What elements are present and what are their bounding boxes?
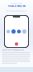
- button[interactable]: Record: [15, 42, 18, 46]
- button[interactable]: Pause: [17, 30, 21, 33]
- button[interactable]: Forward: [22, 29, 26, 34]
- button[interactable]: Play: [11, 29, 16, 34]
- staticText: VOICE NOTES: [8, 4, 25, 8]
- button[interactable]: Rewind: [6, 30, 10, 33]
- staticText: Capture every idea, instantly: [2, 49, 24, 51]
- staticText: DISCOVER YOUR: [11, 2, 22, 4]
